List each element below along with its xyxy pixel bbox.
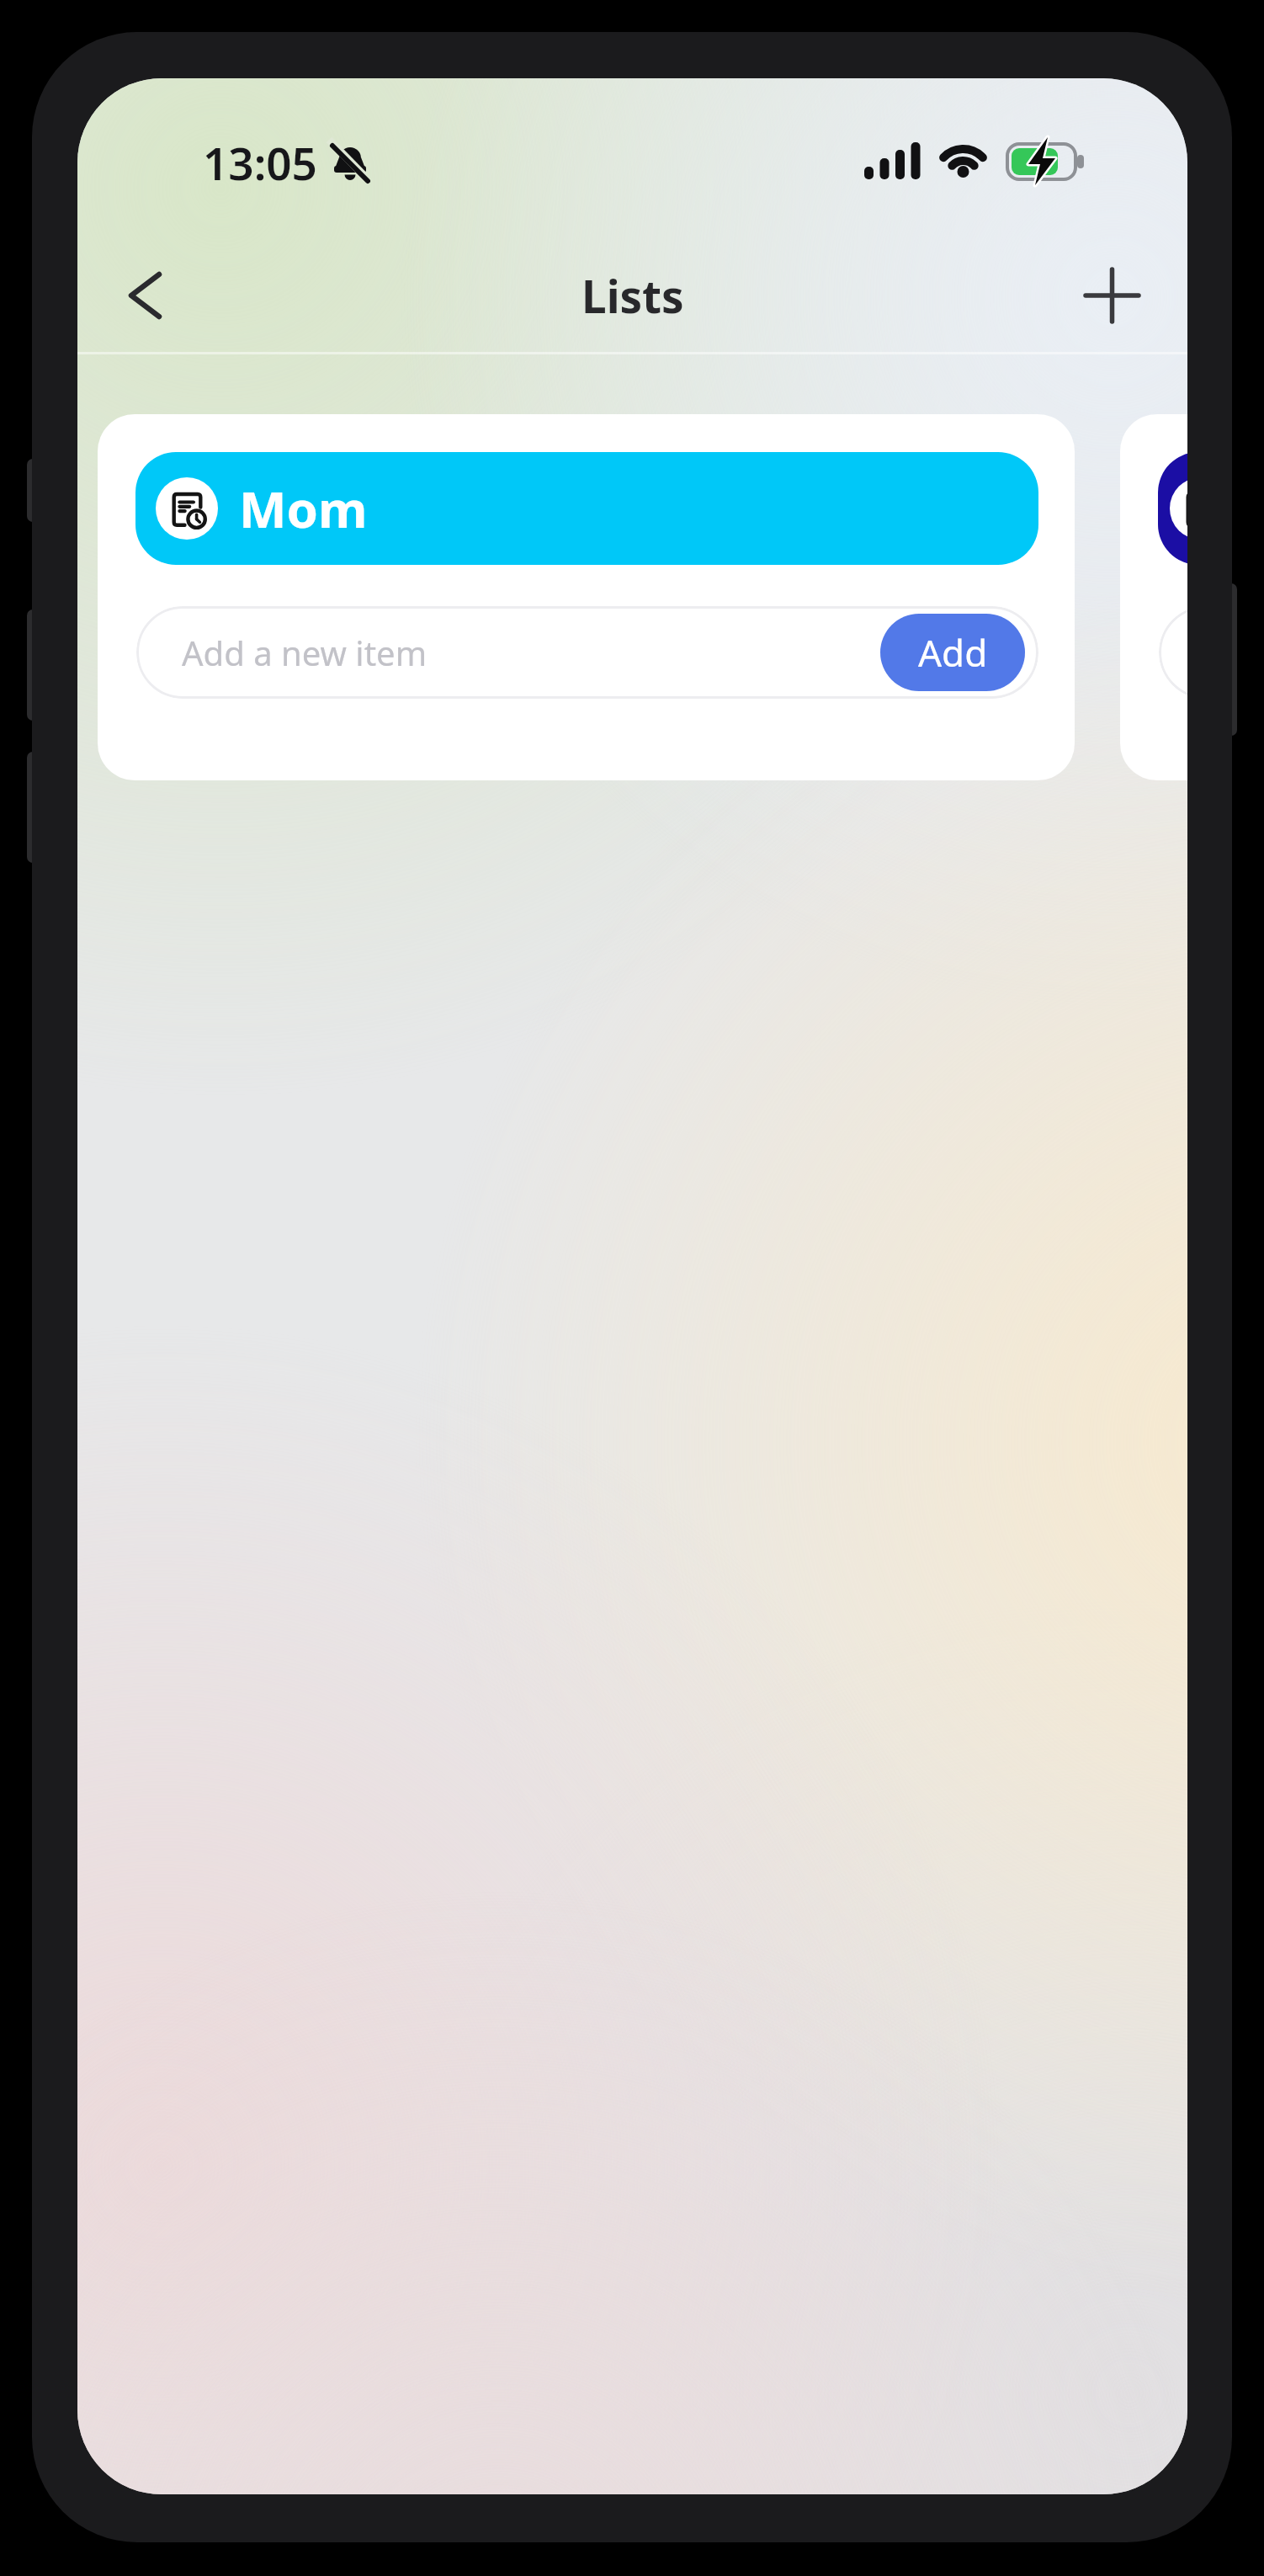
staticText: Mom bbox=[239, 474, 368, 543]
button[interactable]: Add a new item bbox=[136, 606, 1038, 699]
button[interactable] bbox=[111, 269, 178, 322]
button[interactable] bbox=[1158, 452, 1187, 565]
button[interactable] bbox=[1079, 263, 1145, 328]
staticText: 13:05 bbox=[203, 132, 317, 193]
button[interactable]: Add a new item bbox=[1159, 606, 1187, 699]
staticText: Add bbox=[918, 627, 988, 678]
staticText: Add a new item bbox=[182, 630, 428, 675]
button[interactable]: Mom bbox=[135, 452, 1038, 565]
staticText: Lists bbox=[582, 265, 684, 326]
button[interactable]: Add bbox=[880, 614, 1025, 691]
